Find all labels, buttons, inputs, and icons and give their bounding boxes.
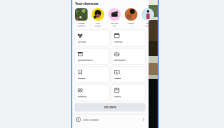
staticText: Tina <box>96 22 139 51</box>
staticText: Creative <box>78 22 160 51</box>
staticText: Birthdays <box>114 58 214 86</box>
staticText: Reels <box>114 95 169 123</box>
button[interactable]: Birthdays <box>111 48 146 64</box>
button[interactable]: See more <box>74 103 146 111</box>
staticText: Love <box>146 22 192 51</box>
staticText: Bhagat <box>95 25 167 53</box>
staticText: Friends <box>78 95 154 123</box>
staticText: Gardening <box>77 25 183 53</box>
staticText: See more <box>104 105 200 128</box>
button[interactable]: Reels <box>111 85 146 101</box>
staticText: Film Critic <box>110 22 211 51</box>
staticText: Video <box>114 76 171 105</box>
button[interactable]: Saved <box>74 66 109 83</box>
button[interactable]: Friends <box>74 85 109 101</box>
button[interactable]: Video <box>111 66 146 83</box>
staticText: Help & support <box>83 118 224 128</box>
staticText: Saved <box>78 76 139 105</box>
staticText: Events <box>114 40 184 68</box>
button[interactable]: Love <box>141 8 154 27</box>
staticText: Club <box>113 25 158 53</box>
staticText: It <box>130 25 145 53</box>
staticText: Wings <box>145 25 207 53</box>
staticText: Marketplace <box>78 58 207 86</box>
button[interactable]: Marketplace <box>74 48 109 64</box>
button[interactable]: Film Critic <box>108 8 121 27</box>
button[interactable]: Tina <box>92 8 104 27</box>
staticText: London <box>128 22 204 51</box>
button[interactable]: Help & support <box>72 115 149 124</box>
button[interactable]: Events <box>111 30 146 46</box>
button[interactable]: Groups <box>74 30 109 46</box>
button[interactable]: London <box>125 8 137 27</box>
button[interactable]: Creative <box>75 8 88 27</box>
staticText: Groups <box>78 40 153 68</box>
staticText: Your shortcuts <box>75 2 224 30</box>
